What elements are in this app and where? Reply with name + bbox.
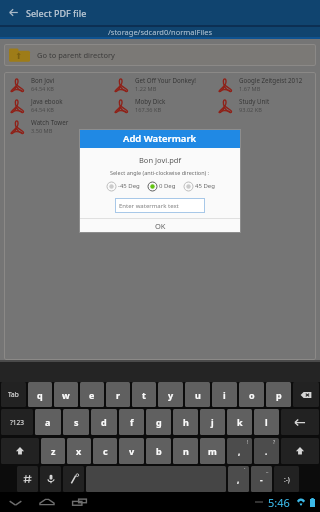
staticText: Select angle (anti-clockwise direction) … xyxy=(110,169,210,176)
button[interactable]: o xyxy=(239,382,264,407)
staticText: 64.54 KB xyxy=(31,106,54,114)
button[interactable]: Watch Tower xyxy=(4,116,108,137)
button[interactable]: c xyxy=(93,438,117,464)
button[interactable]: Switch keyboard xyxy=(17,466,38,492)
staticText: i xyxy=(223,389,226,401)
button[interactable]: 0 Deg xyxy=(147,180,176,192)
staticText: Study Unit xyxy=(239,97,270,105)
button[interactable]: Recent apps xyxy=(66,492,92,512)
staticText: e xyxy=(89,389,95,401)
staticText: z xyxy=(51,445,56,457)
staticText: /storage/sdcard0/normalFiles xyxy=(108,27,213,37)
staticText: c xyxy=(103,445,108,457)
button[interactable]: Enter watermark text xyxy=(115,198,205,213)
staticText: 0 Deg xyxy=(159,182,176,190)
button[interactable]: Bon Jovi xyxy=(4,74,108,95)
button[interactable]: z xyxy=(41,438,65,464)
button[interactable]: t xyxy=(132,382,156,407)
staticText: y xyxy=(168,389,174,401)
button[interactable]: i xyxy=(212,382,237,407)
staticText: :-) xyxy=(284,475,290,484)
button[interactable]: Study Unit xyxy=(212,95,316,116)
button[interactable]: Shift xyxy=(281,438,319,464)
button[interactable]: v xyxy=(119,438,144,464)
button[interactable]: p xyxy=(266,382,291,407)
button[interactable]: , xyxy=(228,466,249,492)
staticText: o xyxy=(249,389,255,401)
button[interactable]: h xyxy=(173,409,198,435)
staticText: p xyxy=(276,389,282,401)
button[interactable]: . xyxy=(254,438,279,464)
button[interactable]: 45 Deg xyxy=(183,180,215,192)
button[interactable]: Settings xyxy=(63,466,84,492)
button[interactable]: Moby Dick xyxy=(108,95,212,116)
button[interactable]: j xyxy=(200,409,225,435)
button[interactable]: s xyxy=(63,409,89,435)
button[interactable]: r xyxy=(106,382,130,407)
button[interactable]: k xyxy=(227,409,252,435)
button[interactable]: a xyxy=(35,409,61,435)
button[interactable]: Tab xyxy=(1,382,26,407)
staticText: 1.67 MB xyxy=(239,85,261,93)
button[interactable]: l xyxy=(254,409,279,435)
button[interactable]: Back xyxy=(2,492,28,512)
staticText: v xyxy=(129,445,135,457)
staticText: t xyxy=(142,389,146,401)
staticText: u xyxy=(195,389,201,401)
button[interactable]: e xyxy=(80,382,104,407)
button[interactable]: m xyxy=(200,438,225,464)
button[interactable]: u xyxy=(185,382,210,407)
staticText: , xyxy=(238,446,241,457)
staticText: 3.50 MB xyxy=(31,127,53,135)
staticText: s xyxy=(74,416,79,428)
button[interactable]: Get Off Your Donkey! xyxy=(108,74,212,95)
button[interactable]: g xyxy=(146,409,171,435)
button[interactable]: Google Zeitgeist 2012 xyxy=(212,74,316,95)
staticText: _ xyxy=(266,467,269,474)
staticText: r xyxy=(116,389,121,401)
button[interactable]: f xyxy=(119,409,144,435)
button[interactable]: Home xyxy=(34,492,60,512)
staticText: m xyxy=(208,445,217,457)
staticText: -45 Deg xyxy=(118,182,140,190)
staticText: Get Off Your Donkey! xyxy=(135,76,197,84)
button[interactable]: Backspace xyxy=(293,382,319,407)
button[interactable]: d xyxy=(91,409,117,435)
button[interactable]: Java ebook xyxy=(4,95,108,116)
button[interactable]: - xyxy=(251,466,272,492)
staticText: ` xyxy=(244,467,246,474)
button[interactable]: w xyxy=(54,382,78,407)
staticText: n xyxy=(183,445,189,457)
staticText: h xyxy=(183,416,189,428)
button[interactable]: , xyxy=(227,438,252,464)
staticText: 1.22 MB xyxy=(135,85,157,93)
staticText: Moby Dick xyxy=(135,97,166,105)
button[interactable]: b xyxy=(146,438,171,464)
button[interactable]: Back xyxy=(0,0,26,25)
button[interactable]: Go to parent directory xyxy=(4,44,316,66)
staticText: q xyxy=(37,389,43,401)
staticText: - xyxy=(260,474,263,485)
button[interactable]: Enter xyxy=(281,409,319,435)
staticText: 5:46 xyxy=(268,495,290,510)
staticText: Add Watermark xyxy=(123,132,197,145)
button[interactable]: Voice input xyxy=(40,466,61,492)
staticText: Bon Jovi.pdf xyxy=(139,155,181,165)
button[interactable]: n xyxy=(173,438,198,464)
button[interactable]: -45 Deg xyxy=(106,180,140,192)
button[interactable]: :-) xyxy=(274,466,299,492)
staticText: k xyxy=(237,416,243,428)
button[interactable]: ?123 xyxy=(1,409,33,435)
staticText: Select PDF file xyxy=(26,7,87,19)
button[interactable]: x xyxy=(67,438,91,464)
staticText: ? xyxy=(273,439,276,446)
button[interactable]: OK xyxy=(79,219,241,233)
button[interactable]: Shift xyxy=(1,438,39,464)
button[interactable]: q xyxy=(28,382,52,407)
button[interactable]: y xyxy=(158,382,183,407)
staticText: ! xyxy=(247,439,249,446)
staticText: Google Zeitgeist 2012 xyxy=(239,76,303,84)
staticText: 167.36 KB xyxy=(135,106,162,114)
staticText: Tab xyxy=(8,390,19,399)
